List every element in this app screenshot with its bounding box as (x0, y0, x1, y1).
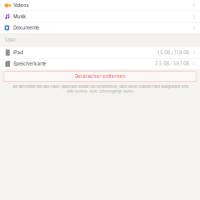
staticText: iPad (13, 50, 23, 55)
button[interactable]: Musik (0, 11, 200, 22)
button[interactable]: Dokumente (0, 22, 200, 33)
staticText: 1,5 GB / 11,8 GB (157, 50, 189, 55)
button[interactable]: Gerät sicher entfernen (4, 71, 196, 82)
staticText: Speicherkarte (13, 61, 46, 67)
button[interactable]: Videos (0, 0, 200, 11)
staticText: Vor dem Entfernen des Flash-Speichers so… (12, 84, 188, 94)
staticText: Gerät sicher entfernen (74, 74, 125, 79)
staticText: Videos (13, 3, 28, 8)
staticText: GERÄT (5, 38, 16, 42)
staticText: 2,5 GB / 59,1 GB (155, 61, 189, 66)
button[interactable]: Speicherkarte (0, 58, 200, 69)
staticText: Musik (13, 14, 26, 19)
staticText: Dokumente (13, 25, 39, 31)
button[interactable]: iPad (0, 47, 200, 58)
